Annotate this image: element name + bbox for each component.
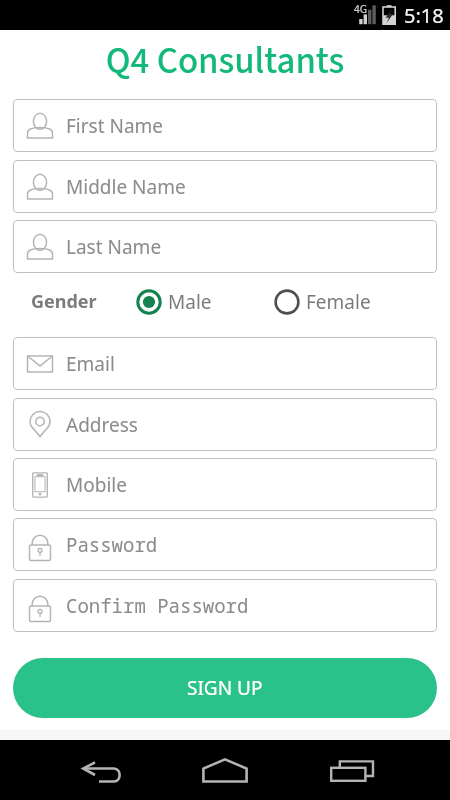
button[interactable]: Female (274, 288, 371, 316)
staticText: 5:18 (404, 2, 444, 29)
staticText: Email (66, 351, 115, 377)
staticText: Mobile (66, 472, 127, 498)
staticText: Q4 Consultants (0, 35, 450, 88)
button[interactable]: Home (185, 750, 265, 790)
button[interactable]: Male (136, 288, 212, 316)
button[interactable]: Confirm Password (13, 579, 437, 632)
button[interactable]: Middle Name (13, 160, 437, 213)
staticText: Confirm Password (66, 593, 249, 619)
staticText: First Name (66, 113, 164, 139)
staticText: Last Name (66, 234, 162, 260)
staticText: Gender (31, 289, 97, 314)
button[interactable]: Back (62, 752, 142, 792)
button[interactable]: First Name (13, 99, 437, 152)
button[interactable]: Last Name (13, 220, 437, 273)
staticText: 4G (354, 2, 367, 16)
button[interactable]: SIGN UP (13, 658, 437, 718)
button[interactable]: Password (13, 518, 437, 571)
button[interactable]: Mobile (13, 458, 437, 511)
staticText: Address (66, 412, 138, 438)
button[interactable]: Address (13, 398, 437, 451)
staticText: SIGN UP (187, 675, 263, 701)
staticText: Male (168, 289, 212, 315)
button[interactable]: Recent apps (312, 751, 392, 791)
staticText: Female (306, 289, 371, 315)
staticText: Password (66, 532, 158, 558)
staticText: Middle Name (66, 174, 186, 200)
button[interactable]: Email (13, 337, 437, 390)
